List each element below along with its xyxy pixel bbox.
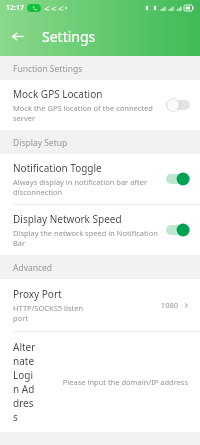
staticText: Notification Toggle [13, 161, 102, 175]
staticText: Display the network speed in Notificatio… [13, 228, 160, 248]
button[interactable]: On [166, 223, 190, 237]
staticText: Mock GPS Location [13, 87, 103, 101]
staticText: HTTP/SOCKS5 listen port [13, 303, 86, 323]
button[interactable]: Back [0, 19, 34, 53]
staticText: Settings [42, 27, 96, 46]
staticText: Function Settings [13, 63, 83, 75]
button[interactable]: On [166, 172, 190, 186]
button[interactable]: Mock GPS Location [0, 80, 200, 130]
staticText: Advanced [13, 262, 53, 274]
staticText: 1080 [160, 300, 178, 310]
button[interactable]: Off [166, 98, 190, 112]
staticText: Proxy Port [13, 287, 62, 301]
staticText: Please input the domain/IP address [62, 377, 188, 387]
staticText: Always display in notification bar after… [13, 177, 160, 197]
staticText: Alternate Login Address [13, 340, 37, 424]
button[interactable]: Notification Toggle [0, 154, 200, 204]
button[interactable]: Display Network Speed [0, 205, 200, 255]
button[interactable]: Proxy Port [0, 279, 200, 331]
staticText: Display Network Speed [13, 212, 122, 226]
staticText: Display Setup [13, 137, 68, 149]
staticText: 12:17 [6, 3, 24, 13]
button[interactable]: Alternate Login Address [0, 332, 200, 432]
staticText: Mock the GPS location of the connected s… [13, 103, 160, 123]
